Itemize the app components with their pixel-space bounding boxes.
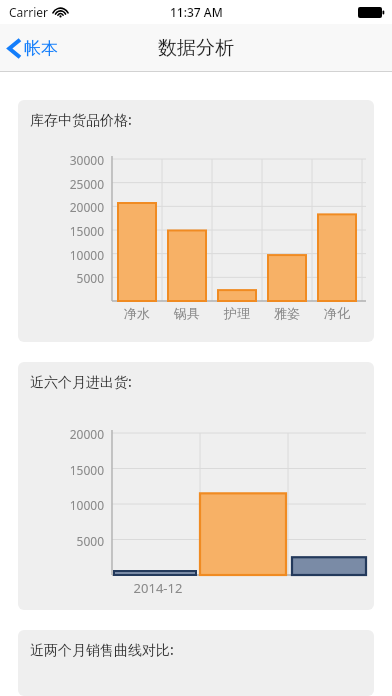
staticText: 净水 <box>115 305 159 321</box>
staticText: 库存中货品价格: <box>30 110 132 129</box>
staticText: 20000 <box>32 426 104 442</box>
button[interactable]: 近两个月销售曲线对比: <box>18 630 374 696</box>
button[interactable]: 帐本 <box>0 32 68 65</box>
staticText: 雅姿 <box>265 305 309 321</box>
staticText: Carrier <box>9 4 49 20</box>
staticText: 25000 <box>32 176 104 192</box>
staticText: 近两个月销售曲线对比: <box>30 640 174 659</box>
staticText: 5000 <box>32 533 104 549</box>
staticText: 11:37 AM <box>170 4 223 20</box>
staticText: 锅具 <box>165 305 209 321</box>
staticText: 10000 <box>32 497 104 513</box>
staticText: 2014-12 <box>118 579 198 597</box>
staticText: 30000 <box>32 152 104 168</box>
staticText: 近六个月进出货: <box>30 372 132 391</box>
staticText: 净化 <box>315 305 359 321</box>
staticText: 15000 <box>32 462 104 478</box>
staticText: 15000 <box>32 223 104 239</box>
staticText: 20000 <box>32 199 104 215</box>
staticText: 帐本 <box>24 38 58 59</box>
staticText: 护理 <box>215 305 259 321</box>
staticText: 数据分析 <box>158 36 234 60</box>
staticText: 10000 <box>32 247 104 263</box>
staticText: 5000 <box>32 270 104 286</box>
button[interactable]: 近六个月进出货: <box>18 362 374 610</box>
button[interactable]: 库存中货品价格: <box>18 100 374 342</box>
